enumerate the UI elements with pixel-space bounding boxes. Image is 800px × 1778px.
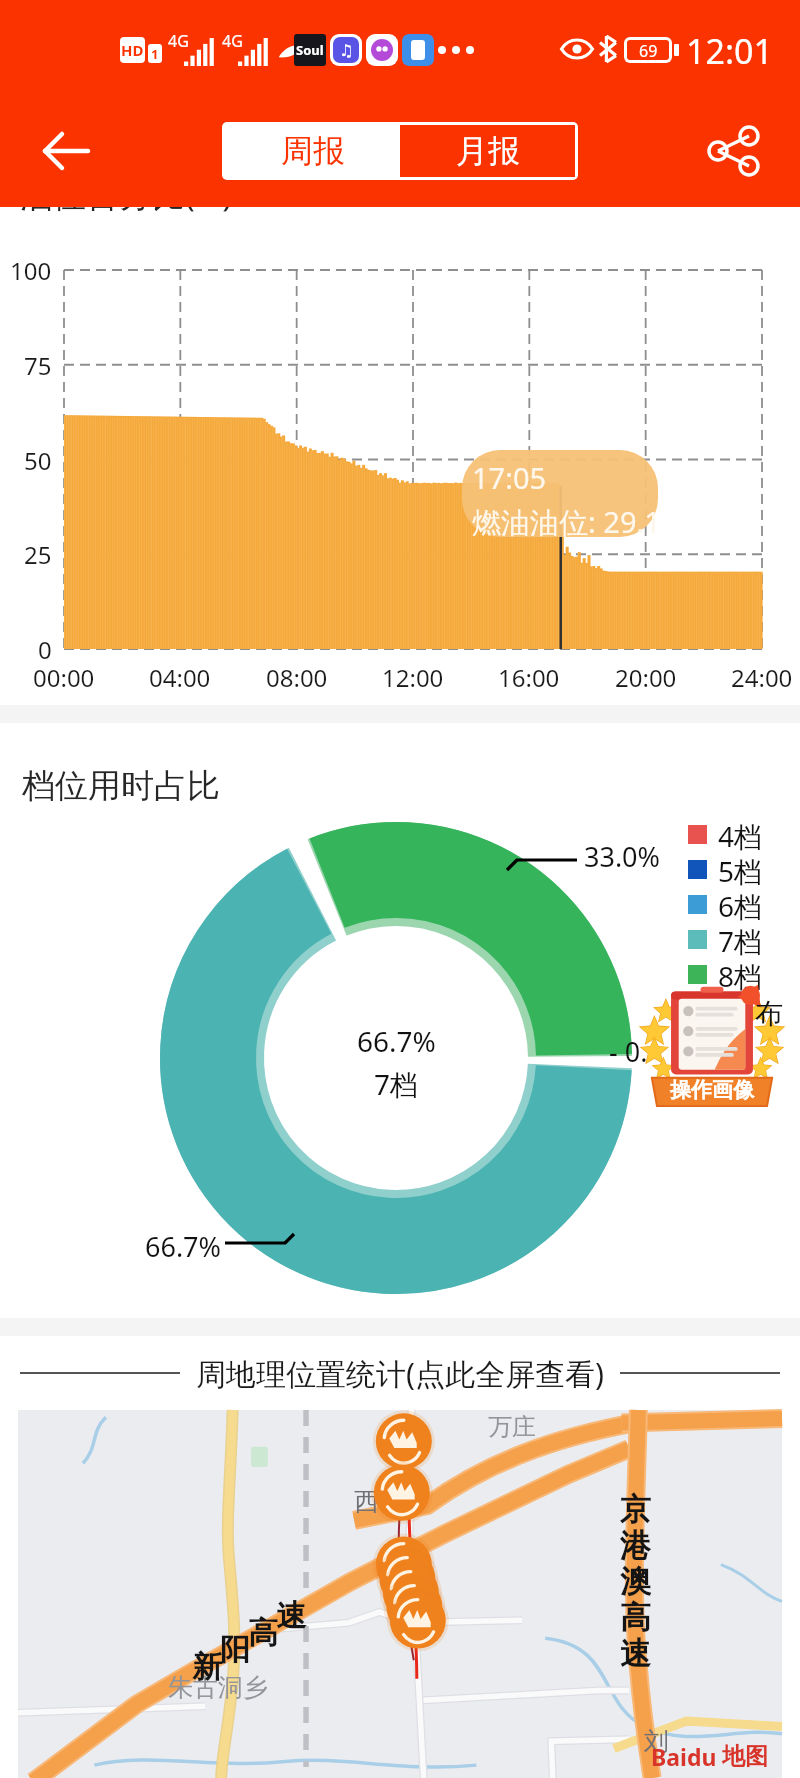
staticText: 刘 (644, 1726, 669, 1757)
staticText: 朱古洞乡 (168, 1672, 268, 1703)
staticText: 75 (24, 349, 52, 382)
staticText: 50 (24, 444, 52, 477)
staticText: Soul (296, 41, 324, 59)
button[interactable]: 操作画像 (648, 978, 776, 1112)
staticText: 7档 (374, 1065, 419, 1103)
button[interactable]: Back (34, 119, 98, 183)
button[interactable]: 月报 (400, 125, 575, 177)
staticText: 4G (168, 30, 189, 52)
staticText: 澳 (620, 1562, 651, 1598)
staticText: 17:05 (472, 458, 547, 497)
button[interactable]: Share (702, 119, 766, 183)
button[interactable]: 4档 (688, 817, 763, 852)
staticText: 00:00 (33, 661, 95, 694)
staticText: 08:00 (266, 661, 328, 694)
staticText: 4G (222, 30, 243, 52)
staticText: 地图 (722, 1742, 768, 1771)
staticText: 月报 (456, 131, 520, 171)
staticText: - 0. (609, 1033, 648, 1070)
staticText: 1 (151, 45, 159, 63)
staticText: 高 (248, 1614, 278, 1652)
staticText: 5档 (718, 852, 763, 887)
staticText: 京 (620, 1490, 651, 1526)
staticText: 69 (639, 40, 658, 60)
staticText: 24:00 (731, 661, 793, 694)
staticText: 周地理位置统计(点此全屏查看) (196, 1353, 604, 1394)
button[interactable]: 6档 (688, 887, 763, 922)
staticText: 16:00 (498, 661, 560, 694)
staticText: 操作画像 (670, 1077, 754, 1103)
staticText: HD (121, 40, 144, 60)
button[interactable]: 8档 (688, 957, 763, 992)
staticText: 4档 (718, 817, 763, 852)
staticText: 万庄 (488, 1412, 536, 1442)
staticText: Baidu (651, 1741, 717, 1772)
staticText: 布 (755, 996, 783, 1031)
button[interactable]: 7档 (688, 922, 763, 957)
staticText: 速 (276, 1597, 306, 1635)
staticText: 速 (620, 1634, 651, 1670)
button[interactable]: 周报 (225, 125, 400, 177)
staticText: 100 (10, 254, 52, 287)
staticText: 8档 (718, 957, 763, 992)
staticText: 12:01 (686, 28, 773, 74)
button[interactable]: 周地理位置统计(点此全屏查看) (0, 1336, 800, 1410)
staticText: 12:00 (382, 661, 444, 694)
staticText: 新 (192, 1648, 222, 1686)
staticText: 西 (354, 1486, 379, 1517)
staticText: 港 (620, 1526, 651, 1562)
staticText: 阳 (220, 1631, 250, 1669)
staticText: 周报 (281, 131, 345, 171)
staticText: ♫ (339, 41, 354, 60)
staticText: 7档 (718, 922, 763, 957)
staticText: 6档 (718, 887, 763, 922)
staticText: 高 (620, 1598, 651, 1634)
button[interactable]: 5档 (688, 852, 763, 887)
staticText: 档位用时占比 (22, 765, 220, 807)
staticText: 20:00 (615, 661, 677, 694)
staticText: 0 (38, 633, 52, 666)
staticText: 25 (24, 538, 52, 571)
staticText: 本周总览 (668, 172, 780, 207)
staticText: 33.0% (584, 838, 661, 875)
staticText: 油位百分比(%) (20, 172, 233, 217)
staticText: 04:00 (149, 661, 211, 694)
staticText: 燃油油位: 29.1 (472, 502, 661, 542)
staticText: 66.7% (357, 1022, 436, 1060)
staticText: 66.7% (145, 1228, 222, 1265)
